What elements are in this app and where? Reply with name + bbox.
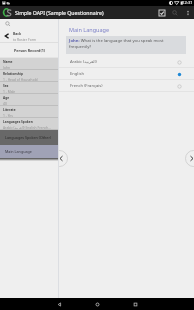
button[interactable]: Next question (185, 150, 194, 167)
staticText: Back (13, 31, 22, 36)
button[interactable]: Relationship (0, 70, 58, 82)
staticText: frequently? (69, 44, 92, 50)
staticText: 12:31 (182, 0, 193, 6)
staticText: Languages Spoken (Other) (5, 135, 52, 140)
staticText: English (70, 71, 84, 77)
button[interactable]: Name (0, 58, 58, 70)
button[interactable]: Sex (0, 82, 58, 94)
staticText: 1 - Head of Household (3, 77, 38, 81)
staticText: John: What is the language that you spea… (69, 38, 164, 44)
button[interactable]: Back (0, 29, 58, 42)
staticText: French (Français) (70, 83, 103, 89)
staticText: Arabic (العربية),English,French... (3, 125, 51, 129)
staticText: Name (3, 60, 13, 64)
staticText: John (3, 65, 10, 69)
button[interactable]: Arabic (العربية) (59, 56, 194, 68)
staticText: 1 - Yes (3, 113, 13, 117)
button[interactable]: French (Français) (59, 80, 194, 92)
button[interactable]: Search (168, 6, 181, 19)
staticText: 1 - Male (3, 89, 16, 93)
button[interactable]: Previous question (59, 150, 68, 167)
button[interactable]: Languages Spoken (0, 118, 58, 130)
button[interactable]: Search records (0, 19, 58, 29)
button[interactable]: More options (181, 6, 194, 19)
button[interactable]: Back (48, 298, 70, 310)
staticText: Person Record(1) (14, 48, 45, 53)
staticText: Simple OAPI (Sample Questionnaire) (15, 9, 104, 16)
staticText: Languages Spoken (3, 120, 33, 124)
button[interactable]: Recent apps (124, 298, 146, 310)
button[interactable]: Main Language (0, 145, 58, 158)
staticText: Sex (3, 84, 9, 88)
button[interactable]: Person Record(1) (0, 43, 58, 57)
button[interactable]: Home (86, 298, 108, 310)
staticText: to Roster Form (13, 37, 37, 41)
staticText: 40 (3, 101, 7, 105)
button[interactable]: English (59, 68, 194, 80)
staticText: Arabic (العربية) (70, 59, 97, 65)
staticText: Relationship (3, 72, 23, 76)
button[interactable]: Languages Spoken (Other) (0, 130, 58, 145)
staticText: Age (3, 96, 10, 100)
button[interactable]: Navigate up (0, 6, 15, 19)
button[interactable]: Literate (0, 106, 58, 118)
staticText: Main Language (69, 26, 110, 33)
button[interactable]: Mark as complete (155, 6, 168, 19)
staticText: Main Language (5, 149, 32, 154)
button[interactable]: Age (0, 94, 58, 106)
staticText: Literate (3, 108, 16, 112)
